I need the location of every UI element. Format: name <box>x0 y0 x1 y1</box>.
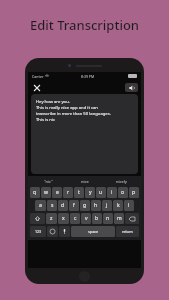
button[interactable]: Speaker <box>125 83 138 92</box>
staticText: y <box>89 189 92 196</box>
staticText: x <box>62 215 65 222</box>
button[interactable]: m <box>114 213 124 224</box>
staticText: w <box>44 189 48 196</box>
button[interactable]: r <box>63 187 73 198</box>
button[interactable]: l <box>124 200 134 211</box>
button[interactable]: a <box>35 200 46 211</box>
button[interactable]: 123 <box>30 226 46 237</box>
staticText: j <box>106 202 108 209</box>
staticText: v <box>85 215 88 222</box>
staticText: r <box>67 189 70 196</box>
staticText: "nic" <box>44 179 53 184</box>
button[interactable]: nice <box>67 179 103 184</box>
staticText: This is nic <box>36 117 55 123</box>
staticText: a <box>39 202 42 209</box>
staticText: b <box>95 215 99 222</box>
button[interactable]: x <box>58 213 69 224</box>
button[interactable]: q <box>30 187 40 198</box>
button[interactable]: Backspace <box>125 213 139 224</box>
button[interactable]: f <box>69 200 79 211</box>
staticText: return <box>122 229 133 234</box>
button[interactable]: y <box>85 187 95 198</box>
button[interactable]: return <box>116 226 139 237</box>
button[interactable]: h <box>91 200 101 211</box>
button[interactable]: g <box>80 200 90 211</box>
staticText: i <box>111 189 113 196</box>
staticText: d <box>61 202 65 209</box>
button[interactable]: Dictate <box>59 226 70 237</box>
staticText: p <box>132 189 136 196</box>
button[interactable]: e <box>52 187 62 198</box>
button[interactable]: Emoji <box>47 226 58 237</box>
button[interactable]: z <box>46 213 57 224</box>
button[interactable]: c <box>70 213 80 224</box>
button[interactable]: o <box>118 187 128 198</box>
staticText: nicely <box>116 179 127 184</box>
staticText: t <box>78 189 80 196</box>
staticText: n <box>106 215 110 222</box>
button[interactable]: p <box>129 187 139 198</box>
staticText: u <box>99 189 103 196</box>
staticText: f <box>73 202 75 209</box>
staticText: nice <box>81 179 89 184</box>
button[interactable]: space <box>71 226 115 237</box>
staticText: k <box>117 202 120 209</box>
button[interactable]: w <box>41 187 51 198</box>
button[interactable]: nicely <box>103 179 139 184</box>
staticText: e <box>56 189 59 196</box>
staticText: h <box>94 202 98 209</box>
button[interactable]: b <box>92 213 102 224</box>
button[interactable]: Shift <box>30 213 45 224</box>
button[interactable]: Close <box>31 82 42 93</box>
staticText: q <box>33 189 37 196</box>
staticText: space <box>88 229 99 234</box>
button[interactable]: "nic" <box>30 179 67 184</box>
staticText: s <box>51 202 54 209</box>
staticText: Edit Transcription <box>0 16 169 34</box>
button[interactable]: t <box>74 187 84 198</box>
staticText: 8:39 PM <box>81 74 95 79</box>
button[interactable]: s <box>47 200 57 211</box>
button[interactable]: u <box>96 187 106 198</box>
staticText: m <box>117 215 122 222</box>
button[interactable]: i <box>107 187 117 198</box>
staticText: transcribe in more than 50 languages. <box>36 111 111 117</box>
button[interactable]: v <box>81 213 91 224</box>
staticText: This is really nice app and it can <box>36 105 98 111</box>
staticText: l <box>128 202 130 209</box>
staticText: Hey how are you. <box>36 99 70 105</box>
staticText: g <box>83 202 87 209</box>
button[interactable]: d <box>58 200 68 211</box>
button[interactable]: k <box>113 200 123 211</box>
button[interactable]: Hey how are you. <box>31 94 138 174</box>
staticText: c <box>74 215 77 222</box>
staticText: 123 <box>35 229 42 234</box>
staticText: o <box>121 189 125 196</box>
staticText: z <box>50 215 53 222</box>
button[interactable]: j <box>102 200 112 211</box>
staticText: Carrier <box>32 74 44 79</box>
button[interactable]: n <box>103 213 113 224</box>
